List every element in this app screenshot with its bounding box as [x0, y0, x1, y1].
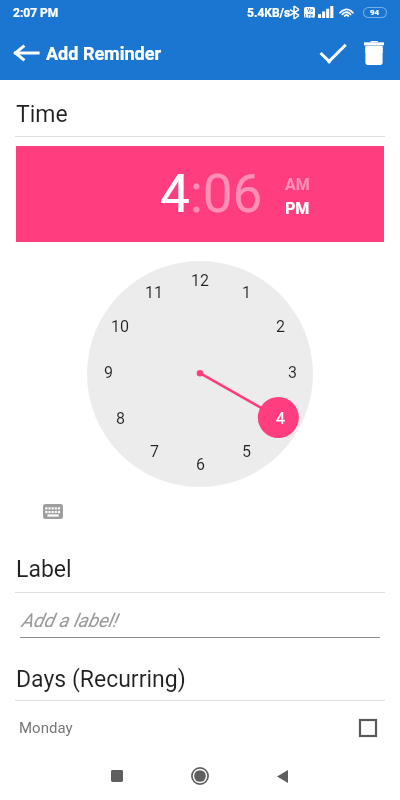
button[interactable]: Monday: [0, 701, 400, 752]
staticText: 5: [242, 442, 251, 461]
staticText: 10: [111, 317, 129, 336]
staticText: 12: [191, 271, 209, 290]
staticText: Time: [16, 101, 68, 128]
button[interactable]: 4: [16, 146, 384, 242]
button[interactable]: Add a label!: [20, 593, 380, 638]
button[interactable]: 8: [105, 403, 135, 433]
staticText: 6: [196, 455, 205, 474]
staticText: Add a label!: [21, 609, 118, 631]
staticText: 2: [276, 317, 285, 336]
button[interactable]: 12: [185, 265, 215, 295]
button[interactable]: 10: [105, 311, 135, 341]
button[interactable]: 7: [139, 436, 169, 466]
staticText: Label: [16, 556, 72, 583]
staticText: Monday: [19, 719, 73, 737]
button[interactable]: Recent apps: [98, 757, 136, 795]
button[interactable]: 4: [160, 163, 190, 225]
staticText: 3: [288, 363, 297, 382]
staticText: 2:07 PM: [13, 6, 59, 20]
button[interactable]: 9: [93, 357, 123, 387]
button[interactable]: 4: [265, 403, 295, 433]
button[interactable]: 11: [139, 277, 169, 307]
button[interactable]: PM: [285, 199, 310, 218]
staticText: 94: [370, 8, 380, 17]
button[interactable]: Delete: [350, 29, 398, 77]
staticText: 8: [116, 409, 125, 428]
button[interactable]: 6: [185, 449, 215, 479]
button[interactable]: 2: [265, 311, 295, 341]
staticText: 9: [104, 363, 113, 382]
button[interactable]: Back: [2, 29, 50, 77]
staticText: Add Reminder: [46, 43, 162, 64]
button[interactable]: 3: [277, 357, 307, 387]
staticText: :06: [190, 163, 263, 225]
staticText: 4: [276, 409, 285, 428]
staticText: Days (Recurring): [16, 666, 186, 693]
staticText: 1: [242, 283, 251, 302]
staticText: LTE: [305, 13, 314, 18]
button[interactable]: Back: [263, 757, 301, 795]
staticText: 5.4KB/s: [247, 6, 291, 20]
button[interactable]: Switch to keyboard input: [38, 501, 68, 521]
staticText: Vo: [307, 7, 313, 13]
button[interactable]: Home: [181, 757, 219, 795]
button[interactable]: Clock: [87, 261, 313, 487]
staticText: 7: [150, 442, 159, 461]
staticText: 11: [145, 283, 163, 302]
button[interactable]: 1: [231, 277, 261, 307]
button[interactable]: 5: [231, 436, 261, 466]
button[interactable]: Save: [309, 29, 357, 77]
button[interactable]: AM: [285, 175, 310, 194]
